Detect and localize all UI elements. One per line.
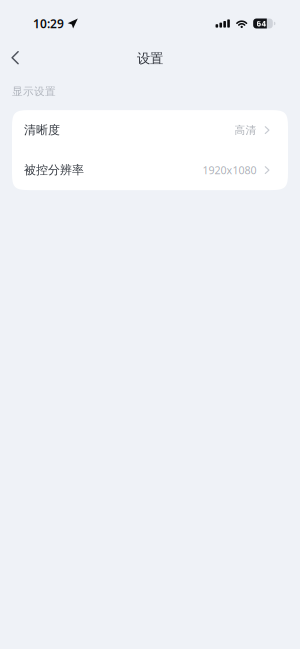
staticText: 1920x1080 (202, 163, 256, 177)
staticText: 设置 (137, 50, 163, 67)
button[interactable]: 被控分辨率 (12, 150, 288, 190)
button[interactable]: Back (4, 48, 26, 69)
staticText: 清晰度 (24, 123, 60, 137)
staticText: 高清 (234, 124, 256, 137)
button[interactable]: 清晰度 (12, 110, 288, 150)
staticText: 64 (257, 18, 267, 29)
staticText: 显示设置 (12, 85, 56, 98)
staticText: 10:29 (33, 15, 64, 31)
staticText: 被控分辨率 (24, 163, 84, 177)
